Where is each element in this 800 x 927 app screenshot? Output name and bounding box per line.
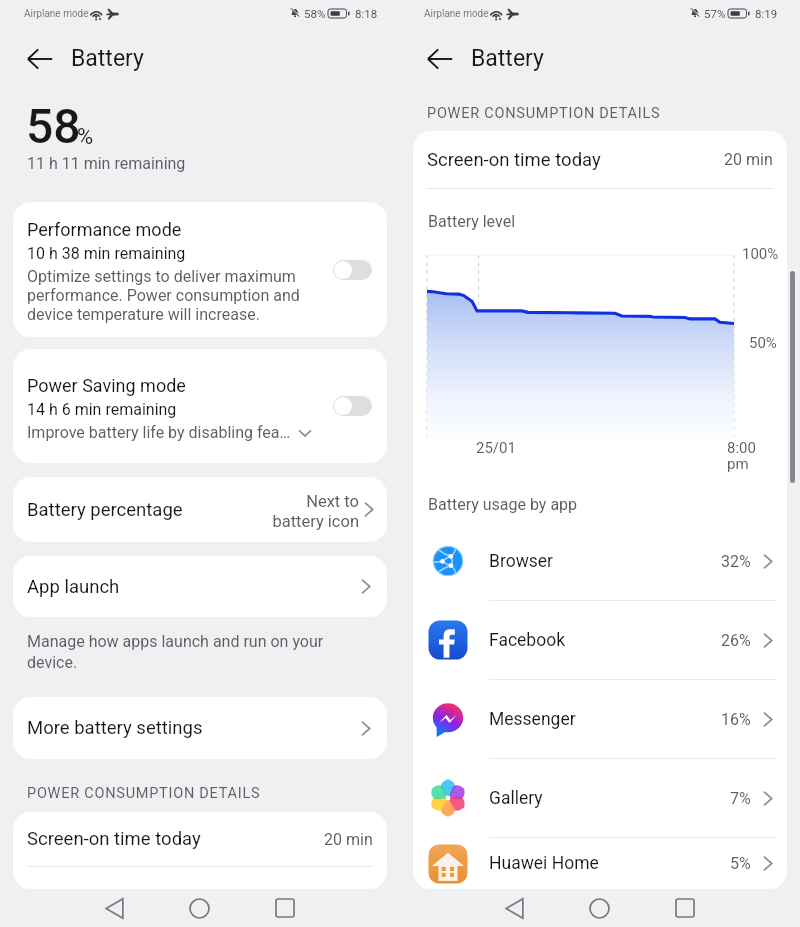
button[interactable]: Browser bbox=[413, 522, 787, 600]
staticText: App launch bbox=[27, 576, 356, 598]
staticText: POWER CONSUMPTION DETAILS bbox=[27, 785, 261, 802]
staticText: 5% bbox=[730, 854, 751, 873]
staticText: Screen-on time today bbox=[27, 828, 324, 850]
button[interactable]: Back bbox=[412, 31, 468, 87]
staticText: Screen-on time today bbox=[427, 149, 724, 171]
staticText: 8:18 bbox=[355, 7, 378, 20]
staticText: Airplane mode bbox=[24, 8, 89, 20]
staticText: Power Saving mode bbox=[27, 375, 186, 396]
staticText: Battery percentage bbox=[27, 499, 272, 521]
staticText: 32% bbox=[721, 552, 751, 571]
staticText: Battery bbox=[471, 45, 544, 72]
staticText: Facebook bbox=[489, 630, 721, 651]
staticText: 57% bbox=[704, 7, 726, 20]
staticText: Next to battery icon bbox=[272, 492, 359, 531]
staticText: 20 min bbox=[324, 830, 373, 849]
staticText: Gallery bbox=[489, 788, 730, 809]
staticText: 58 bbox=[26, 98, 81, 154]
staticText: pm bbox=[727, 455, 749, 473]
button[interactable]: Facebook bbox=[413, 601, 787, 679]
button[interactable]: Back bbox=[486, 889, 542, 927]
button[interactable]: Home bbox=[171, 889, 227, 927]
staticText: Battery bbox=[71, 45, 144, 72]
button[interactable]: Gallery bbox=[413, 759, 787, 837]
staticText: 11 h 11 min remaining bbox=[27, 154, 186, 173]
staticText: 25/01 bbox=[476, 439, 516, 457]
button[interactable]: Toggle bbox=[333, 260, 372, 280]
staticText: Battery usage by app bbox=[428, 495, 578, 514]
staticText: 7% bbox=[730, 789, 751, 808]
staticText: 100% bbox=[742, 245, 779, 263]
staticText: Battery level bbox=[428, 212, 516, 231]
button[interactable]: More battery settings bbox=[13, 697, 387, 759]
button[interactable]: Huawei Home bbox=[413, 838, 787, 889]
button[interactable]: Messenger bbox=[413, 680, 787, 758]
button[interactable]: Screen-on time today bbox=[13, 812, 387, 866]
staticText: 10 h 38 min remaining bbox=[27, 244, 186, 263]
staticText: 26% bbox=[721, 631, 751, 650]
button[interactable]: Back bbox=[86, 889, 142, 927]
staticText: 50% bbox=[749, 334, 777, 352]
button[interactable]: Recents bbox=[657, 889, 713, 927]
staticText: Airplane mode bbox=[424, 8, 489, 20]
button[interactable]: Home bbox=[571, 889, 627, 927]
staticText: % bbox=[77, 124, 94, 150]
staticText: 58% bbox=[304, 7, 326, 20]
staticText: 14 h 6 min remaining bbox=[27, 400, 177, 419]
staticText: Messenger bbox=[489, 709, 721, 730]
staticText: Browser bbox=[489, 551, 721, 572]
staticText: POWER CONSUMPTION DETAILS bbox=[427, 105, 661, 122]
staticText: 20 min bbox=[724, 150, 773, 169]
button[interactable]: Battery percentage bbox=[13, 477, 387, 542]
staticText: Improve battery life by disabling fea… bbox=[27, 423, 291, 442]
staticText: 16% bbox=[721, 710, 751, 729]
staticText: Optimize settings to deliver maximum per… bbox=[27, 267, 300, 324]
staticText: Performance mode bbox=[27, 219, 182, 240]
staticText: Manage how apps launch and run on your d… bbox=[27, 632, 324, 672]
staticText: 8:00 bbox=[727, 439, 756, 457]
button[interactable]: Back bbox=[12, 31, 68, 87]
staticText: 8:19 bbox=[755, 7, 778, 20]
staticText: Huawei Home bbox=[489, 853, 730, 874]
staticText: More battery settings bbox=[27, 717, 356, 739]
button[interactable]: Screen-on time today bbox=[413, 131, 787, 188]
button[interactable]: App launch bbox=[13, 556, 387, 617]
button[interactable]: Recents bbox=[257, 889, 313, 927]
button[interactable]: Toggle bbox=[333, 396, 372, 416]
